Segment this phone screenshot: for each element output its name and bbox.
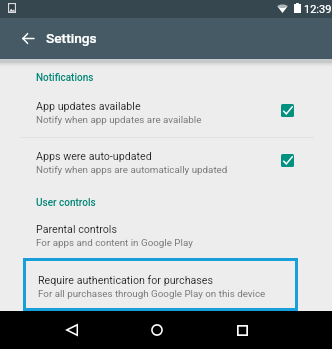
button[interactable]: Apps were auto-updated (0, 147, 332, 191)
button[interactable]: Back (50, 311, 94, 349)
button[interactable]: Require authentication for purchases (26, 261, 295, 308)
button[interactable]: Parental controls (0, 220, 332, 264)
button[interactable]: App updates available (0, 97, 332, 141)
staticText: Notifications (36, 72, 94, 84)
staticText: Parental controls (36, 223, 117, 236)
staticText: Settings (46, 30, 97, 46)
staticText: Notify when app updates are available (36, 114, 202, 125)
staticText: Apps were auto-updated (36, 150, 152, 163)
button[interactable]: Home (135, 311, 179, 349)
staticText: 12:39 (304, 3, 332, 16)
staticText: For apps and content in Google Play (36, 237, 193, 248)
staticText: User controls (36, 197, 96, 209)
staticText: Notify when apps are automatically updat… (36, 164, 228, 175)
staticText: App updates available (36, 100, 141, 113)
staticText: For all purchases through Google Play on… (38, 288, 266, 299)
staticText: Require authentication for purchases (38, 274, 214, 287)
button[interactable]: Navigate up (8, 18, 48, 59)
button[interactable]: Recent apps (220, 311, 264, 349)
